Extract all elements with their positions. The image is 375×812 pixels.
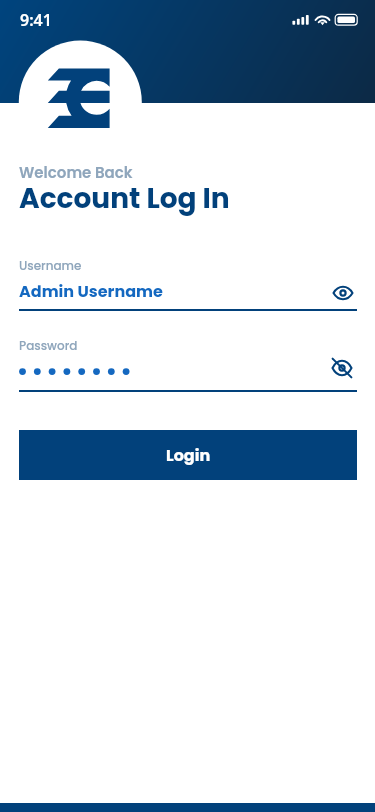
staticText: Login — [166, 444, 211, 466]
button[interactable]: Login — [19, 430, 357, 480]
staticText: Admin Username — [19, 280, 163, 302]
staticText: Username — [19, 257, 82, 274]
staticText: Password — [19, 337, 78, 354]
button[interactable]: Hide password — [328, 354, 356, 382]
button[interactable]: Show username — [329, 279, 357, 307]
staticText: Welcome Back — [19, 162, 133, 183]
staticText: Account Log In — [19, 179, 230, 218]
staticText: 9:41 — [20, 9, 52, 31]
